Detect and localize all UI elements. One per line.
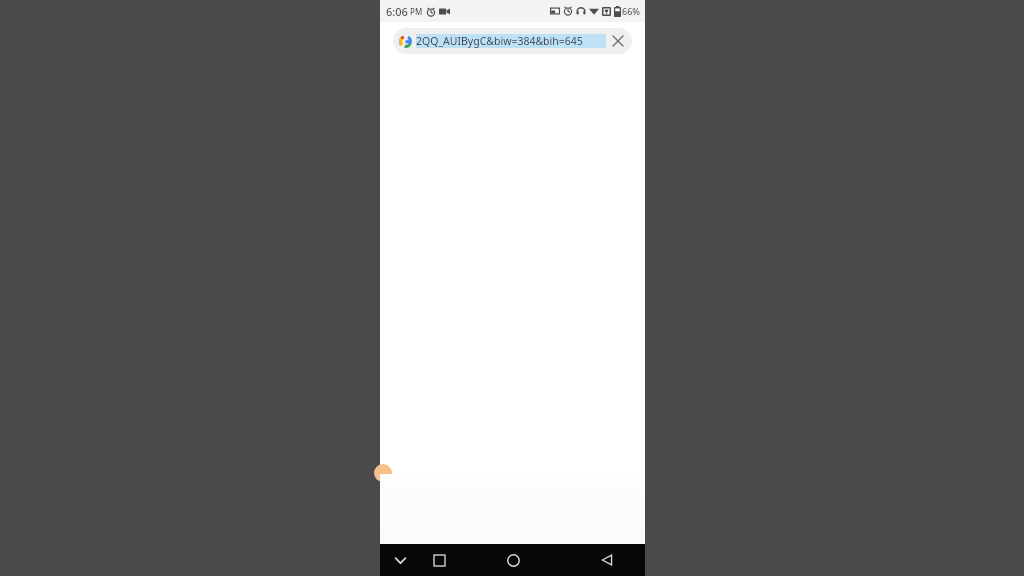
button[interactable]: Hide keyboard xyxy=(380,544,420,576)
button[interactable]: Back xyxy=(569,544,645,576)
button[interactable]: Clear search xyxy=(610,33,626,49)
button[interactable]: 2QQ_AUIBygC&biw=384&bih=645 xyxy=(393,28,632,54)
staticText: 6:06 xyxy=(386,4,408,19)
staticText: 66% xyxy=(622,5,640,17)
button[interactable]: Home xyxy=(458,544,569,576)
button[interactable]: Recent apps xyxy=(420,544,458,576)
staticText: PM xyxy=(410,6,423,17)
staticText: 2QQ_AUIBygC&biw=384&bih=645 xyxy=(416,34,583,48)
